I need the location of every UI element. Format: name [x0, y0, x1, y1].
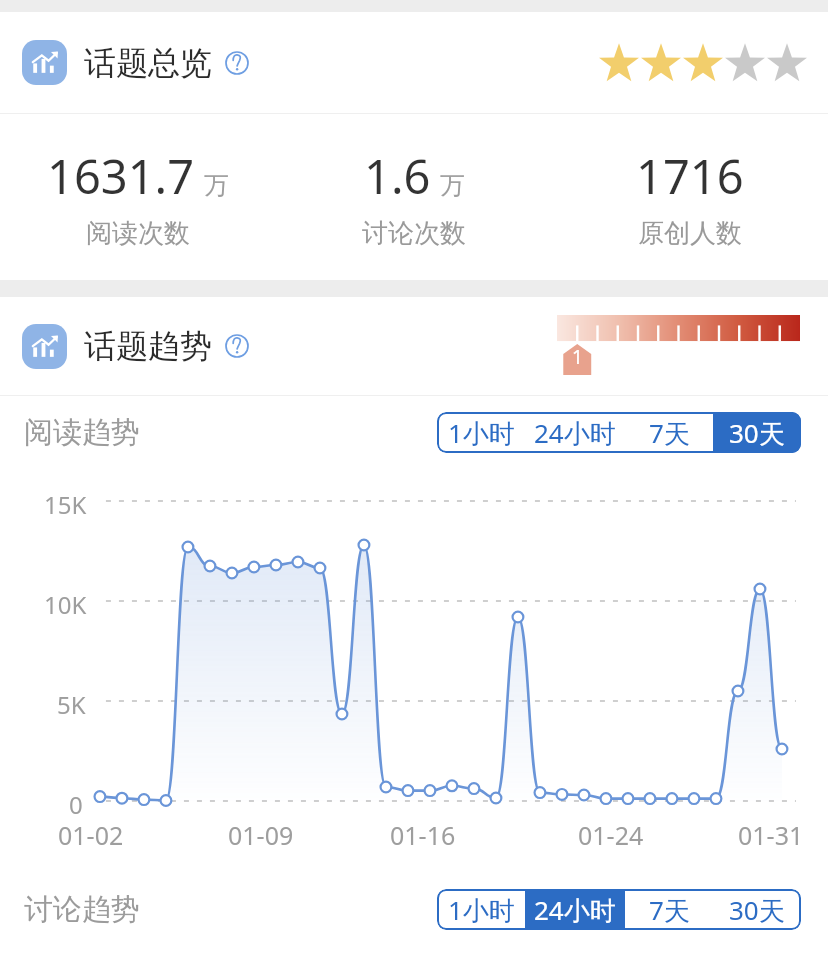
button[interactable]: 1716 [552, 144, 828, 250]
button[interactable]: 话题总览 [22, 12, 808, 113]
button[interactable]: 1.6 [276, 144, 552, 250]
button[interactable]: 评分 1 星 [598, 42, 640, 84]
button[interactable]: 30天 [713, 889, 801, 930]
button[interactable]: 话题趋势 [22, 297, 800, 395]
staticText: 话题趋势 [84, 326, 212, 366]
button[interactable]: 说明 [225, 334, 249, 358]
button[interactable]: 7天 [625, 412, 713, 453]
staticText: 1716 [636, 144, 744, 208]
staticText: 30天 [729, 415, 785, 451]
staticText: 0 [69, 788, 83, 821]
staticText: 讨论次数 [362, 217, 466, 250]
staticText: 1小时 [448, 892, 515, 928]
staticText: 1.6 [364, 144, 431, 208]
staticText: 01-09 [228, 818, 294, 852]
button[interactable]: 说明 [225, 51, 249, 75]
button[interactable]: 1小时 [437, 412, 525, 453]
button[interactable]: 评分 5 星 [766, 42, 808, 84]
button[interactable]: 24小时 [525, 889, 625, 930]
staticText: 7天 [649, 415, 690, 451]
staticText: 万 [204, 170, 229, 201]
staticText: 1小时 [448, 415, 515, 451]
button[interactable]: 24小时 [525, 412, 625, 453]
button[interactable]: 评分 4 星 [724, 42, 766, 84]
button[interactable]: 评分 3 星 [682, 42, 724, 84]
staticText: 01-02 [58, 818, 124, 852]
button[interactable]: 1小时 [437, 889, 525, 930]
button[interactable]: 7天 [625, 889, 713, 930]
staticText: 5K [57, 688, 86, 721]
staticText: 10K [44, 588, 87, 621]
staticText: 阅读次数 [86, 217, 190, 250]
button[interactable]: 30天 [713, 412, 801, 453]
button[interactable]: 热度 1 [557, 315, 800, 377]
staticText: 讨论趋势 [24, 891, 140, 928]
staticText: 24小时 [534, 415, 616, 451]
staticText: 01-31 [738, 818, 804, 852]
staticText: 24小时 [534, 892, 616, 928]
staticText: 01-24 [578, 818, 644, 852]
staticText: 15K [44, 488, 87, 521]
staticText: 阅读趋势 [24, 414, 140, 451]
staticText: 30天 [729, 892, 785, 928]
staticText: 1 [572, 344, 583, 370]
staticText: 万 [440, 170, 465, 201]
staticText: 01-16 [390, 818, 456, 852]
staticText: 7天 [649, 892, 690, 928]
button[interactable]: 评分 2 星 [640, 42, 682, 84]
button[interactable]: 1631.7 [0, 144, 276, 250]
staticText: 原创人数 [638, 217, 742, 250]
staticText: 话题总览 [84, 43, 212, 83]
staticText: 1631.7 [47, 144, 195, 208]
